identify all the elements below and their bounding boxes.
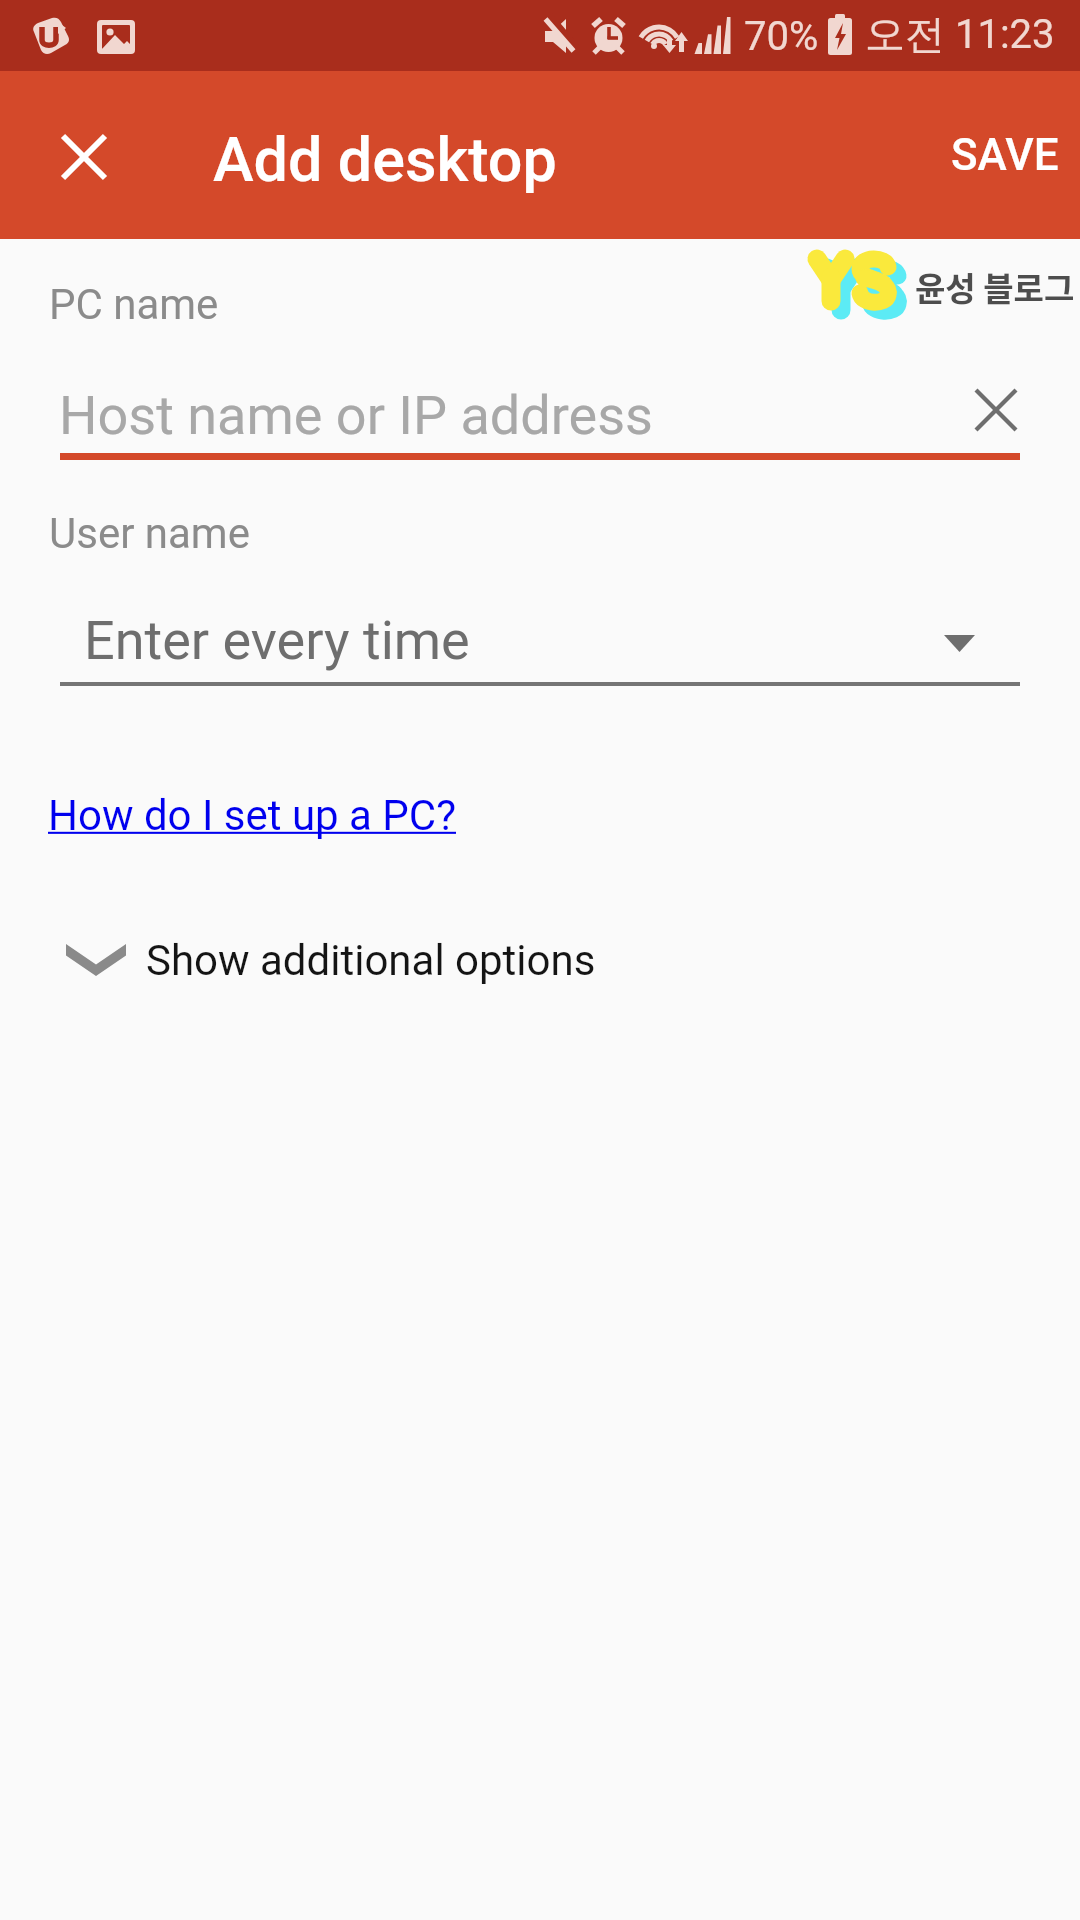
- button[interactable]: How do I set up a PC?: [38, 777, 467, 854]
- staticText: How do I set up a PC?: [48, 791, 457, 840]
- staticText: Enter every time: [84, 609, 470, 672]
- staticText: SAVE: [951, 129, 1059, 181]
- button[interactable]: User name: Enter every time: [60, 600, 1020, 686]
- button[interactable]: Clear text: [956, 370, 1036, 450]
- staticText: 70%: [744, 13, 819, 60]
- staticText: Add desktop: [213, 124, 557, 195]
- button[interactable]: Close: [20, 93, 148, 221]
- staticText: 오전 11:23: [865, 9, 1055, 59]
- staticText: User name: [49, 509, 250, 558]
- button[interactable]: Show additional options: [0, 915, 1080, 1005]
- button[interactable]: SAVE: [920, 71, 1070, 239]
- staticText: 윤성 블로그: [915, 263, 1075, 311]
- staticText: Host name or IP address: [59, 384, 653, 447]
- staticText: Show additional options: [146, 936, 596, 985]
- staticText: PC name: [49, 280, 219, 329]
